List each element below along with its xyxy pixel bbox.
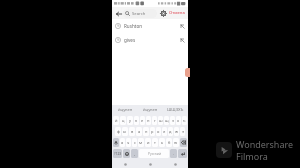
staticText: а: [138, 129, 141, 134]
button[interactable]: Settings: [159, 9, 167, 17]
staticText: л: [163, 129, 166, 134]
staticText: Search: [132, 11, 146, 17]
button[interactable]: а: [136, 127, 142, 136]
button[interactable]: л: [162, 127, 167, 136]
button[interactable]: йцукен: [138, 105, 163, 115]
button[interactable]: я: [120, 138, 125, 147]
button[interactable]: Period: [170, 149, 177, 158]
staticText: т: [154, 140, 156, 145]
staticText: я: [121, 140, 124, 145]
staticText: ж: [175, 129, 179, 134]
button[interactable]: и: [145, 138, 151, 147]
button[interactable]: э: [180, 127, 185, 136]
staticText: ш: [159, 118, 163, 123]
button[interactable]: у: [127, 116, 133, 125]
staticText: е: [141, 118, 144, 123]
button[interactable]: gives: [112, 33, 188, 47]
staticText: с: [134, 140, 136, 145]
button[interactable]: ш: [158, 116, 163, 125]
button[interactable]: б: [166, 138, 172, 147]
staticText: Rushton: [124, 23, 143, 29]
staticText: к: [135, 118, 138, 123]
button[interactable]: д: [168, 127, 173, 136]
staticText: б: [168, 140, 171, 145]
staticText: ?123: [114, 151, 122, 156]
button[interactable]: г: [152, 116, 157, 125]
button[interactable]: т: [152, 138, 158, 147]
staticText: .: [173, 151, 175, 156]
staticText: ф: [117, 129, 120, 134]
staticText: ч: [127, 140, 130, 145]
staticText: г: [154, 118, 156, 123]
button[interactable]: р: [150, 127, 155, 136]
button[interactable]: м: [138, 138, 144, 147]
staticText: ю: [174, 140, 178, 145]
staticText: ШЩЗХЪ: [167, 107, 184, 113]
staticText: ц: [122, 118, 125, 123]
button[interactable]: Back: [114, 9, 123, 18]
staticText: gives: [124, 37, 136, 43]
staticText: Filmora: [236, 150, 268, 162]
button[interactable]: х: [176, 116, 181, 125]
button[interactable]: н: [146, 116, 151, 125]
staticText: Отмена: [169, 10, 185, 16]
staticText: в: [131, 129, 134, 134]
staticText: х: [177, 118, 180, 123]
button[interactable]: е: [140, 116, 145, 125]
button[interactable]: Comma: [131, 149, 138, 158]
staticText: ъ: [183, 118, 186, 123]
button[interactable]: Backspace: [180, 138, 187, 147]
button[interactable]: к: [134, 116, 139, 125]
button[interactable]: й: [113, 116, 119, 125]
button[interactable]: ф: [115, 127, 121, 136]
staticText: ь: [161, 140, 164, 145]
staticText: Русский: [148, 151, 161, 156]
staticText: Wondershare: [236, 138, 294, 150]
button[interactable]: Shift: [113, 138, 119, 147]
staticText: о: [157, 129, 160, 134]
staticText: м: [139, 140, 143, 145]
staticText: йцукен: [143, 107, 158, 113]
button[interactable]: Enter: [178, 149, 187, 158]
staticText: п: [145, 129, 148, 134]
staticText: э: [182, 129, 184, 134]
button[interactable]: в: [129, 127, 135, 136]
button[interactable]: Rushton: [112, 19, 188, 33]
button[interactable]: ь: [159, 138, 165, 147]
staticText: йцукен: [118, 107, 133, 113]
button[interactable]: ШЩЗХЪ: [163, 105, 188, 115]
button[interactable]: Recents: [112, 160, 138, 168]
staticText: ы: [123, 129, 127, 134]
staticText: н: [147, 118, 150, 123]
staticText: щ: [165, 118, 169, 123]
button[interactable]: ц: [120, 116, 126, 125]
button[interactable]: з: [170, 116, 175, 125]
button[interactable]: Русский: [139, 149, 169, 158]
button[interactable]: с: [132, 138, 137, 147]
button[interactable]: Emoji: [123, 149, 130, 158]
button[interactable]: щ: [164, 116, 169, 125]
staticText: д: [169, 129, 172, 134]
button[interactable]: ч: [126, 138, 131, 147]
staticText: у: [129, 118, 132, 123]
button[interactable]: Search: [123, 9, 157, 18]
button[interactable]: ?123: [113, 149, 122, 158]
button[interactable]: ж: [174, 127, 179, 136]
button[interactable]: ъ: [182, 116, 187, 125]
button[interactable]: йцукен: [112, 105, 138, 115]
button[interactable]: о: [156, 127, 161, 136]
button[interactable]: Back: [163, 160, 188, 168]
staticText: з: [172, 118, 174, 123]
staticText: и: [147, 140, 150, 145]
staticText: й: [115, 118, 118, 123]
staticText: ,: [134, 151, 136, 156]
staticText: р: [151, 129, 154, 134]
button[interactable]: ы: [122, 127, 128, 136]
button[interactable]: п: [143, 127, 149, 136]
button[interactable]: ю: [173, 138, 179, 147]
button[interactable]: Home: [138, 160, 163, 168]
button[interactable]: Отмена: [168, 9, 186, 17]
